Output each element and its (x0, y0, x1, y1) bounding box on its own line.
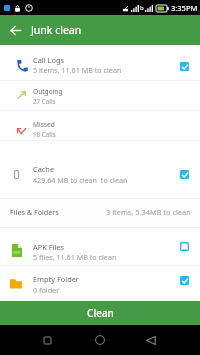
staticText: Missed (33, 120, 55, 129)
staticText: 3 items, 5.34MB to clean (106, 207, 191, 217)
staticText: Call Logs (33, 55, 64, 65)
staticText: Files & Folders (10, 207, 59, 217)
staticText: 18 Calls (33, 130, 56, 139)
button[interactable]: Select (176, 272, 192, 288)
button[interactable]: Clean (0, 301, 200, 325)
staticText: 5 files, 11.61 MB to clean (33, 252, 117, 262)
staticText: 27 Calls (33, 97, 56, 106)
staticText: Clean (87, 306, 114, 320)
button[interactable]: Empty Folder (0, 266, 200, 301)
button[interactable]: Call Logs (0, 45, 200, 80)
staticText: Outgoing (33, 87, 63, 96)
button[interactable]: Back (8, 15, 200, 45)
button[interactable]: Select (176, 238, 192, 254)
button[interactable]: Missed (0, 111, 200, 140)
button[interactable]: Select (176, 58, 192, 74)
staticText: 5 items, 11.61 MB to clean (33, 65, 122, 75)
button[interactable]: Home (89, 325, 111, 355)
staticText: Empty Folder (33, 274, 79, 284)
staticText: 0 folder (33, 285, 60, 295)
button[interactable]: Select (176, 166, 192, 182)
staticText: Cache (33, 164, 55, 174)
button[interactable]: Recent apps (36, 325, 58, 355)
staticText: Junk clean (31, 23, 82, 37)
staticText: b (140, 4, 144, 12)
button[interactable]: Cache (0, 155, 200, 198)
staticText: 3:35PM (171, 3, 198, 13)
button[interactable]: Outgoing (0, 81, 200, 110)
staticText: 429.64 MB to clean to clean (33, 175, 128, 185)
staticText: APK Files (33, 242, 65, 252)
button[interactable]: APK Files (0, 228, 200, 265)
button[interactable]: Back (140, 325, 162, 355)
